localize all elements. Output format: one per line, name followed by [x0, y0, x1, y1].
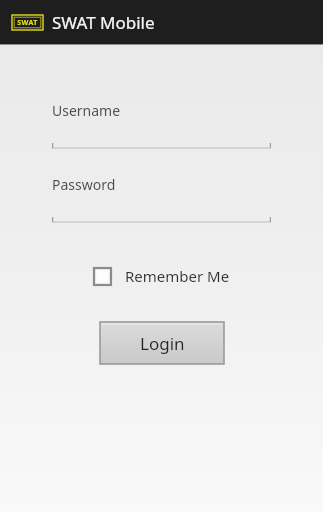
staticText: SWAT: [17, 18, 38, 28]
staticText: Password: [52, 175, 116, 194]
button[interactable]: Login: [100, 322, 224, 364]
button[interactable]: Password: [0, 175, 323, 226]
button[interactable]: Username: [0, 101, 323, 152]
other: SWAT logo: [12, 15, 43, 30]
staticText: Login: [140, 332, 185, 355]
staticText: Username: [52, 101, 121, 120]
staticText: Remember Me: [125, 266, 230, 286]
staticText: SWAT Mobile: [52, 11, 155, 34]
button[interactable]: Remember Me: [90, 262, 234, 290]
